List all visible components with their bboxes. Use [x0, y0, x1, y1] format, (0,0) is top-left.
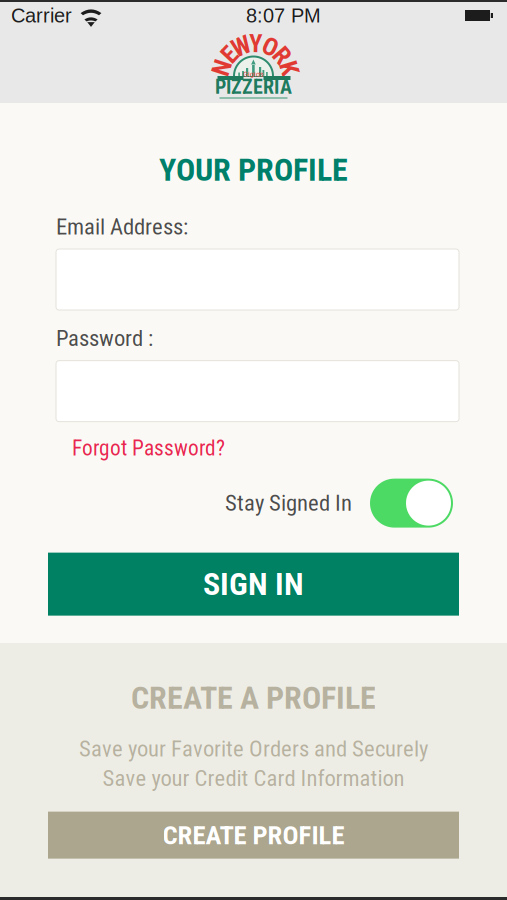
- button[interactable]: Forgot Password?: [56, 422, 225, 461]
- staticText: CREATE PROFILE: [162, 819, 344, 851]
- staticText: Y: [249, 29, 263, 58]
- staticText: Email Address:: [56, 213, 188, 240]
- staticText: Password :: [56, 325, 153, 352]
- staticText: W: [232, 31, 251, 61]
- staticText: E: [223, 40, 235, 70]
- staticText: YOUR PROFILE: [159, 151, 348, 188]
- staticText: K: [282, 54, 296, 83]
- staticText: SIGN IN: [203, 565, 304, 603]
- staticText: R: [275, 41, 289, 70]
- staticText: Save your Favorite Orders and Securely: [79, 735, 428, 762]
- staticText: Stay Signed In: [225, 490, 352, 516]
- staticText: Carrier: [11, 4, 72, 27]
- button[interactable]: SIGN IN: [48, 553, 459, 616]
- button[interactable]: [370, 479, 453, 528]
- button[interactable]: CREATE PROFILE: [48, 812, 459, 859]
- staticText: PIZZERIA: [215, 75, 292, 99]
- staticText: Gigio's: [243, 69, 264, 79]
- staticText: Forgot Password?: [72, 436, 225, 461]
- staticText: O: [263, 32, 278, 62]
- staticText: 8:07 PM: [246, 4, 321, 27]
- staticText: CREATE A PROFILE: [131, 679, 376, 716]
- staticText: N: [214, 53, 230, 82]
- staticText: Save your Credit Card Information: [102, 765, 404, 792]
